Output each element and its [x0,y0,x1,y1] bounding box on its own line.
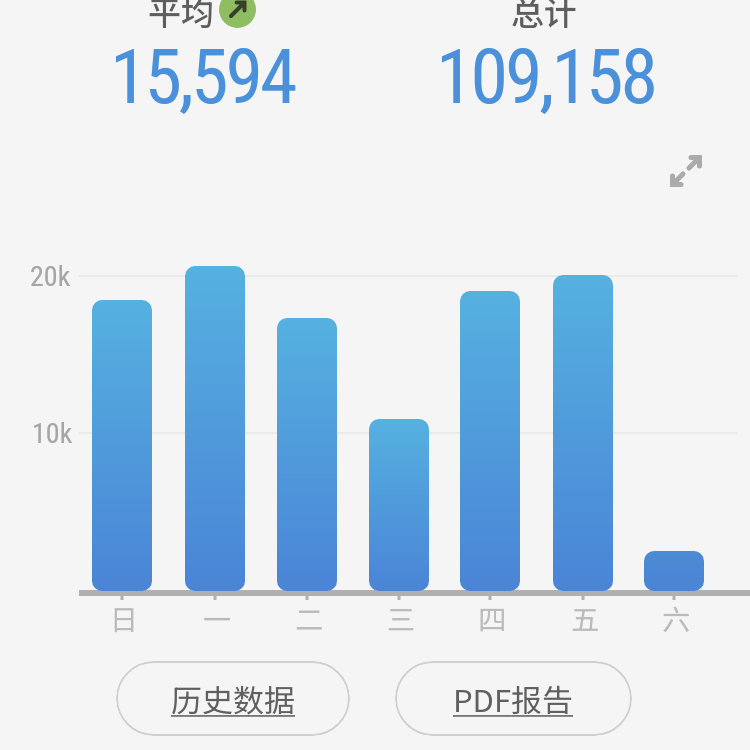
staticText: 10k [32,417,73,450]
button[interactable]: 历史数据 [116,661,350,736]
staticText: 日 [110,598,139,639]
staticText: PDF报告 [453,676,574,721]
staticText: 历史数据 [171,676,295,721]
button[interactable]: PDF报告 [395,661,632,736]
staticText: 总计 [511,0,577,35]
staticText: 四 [478,598,507,639]
staticText: 五 [571,598,600,639]
staticText: 二 [295,598,324,639]
staticText: 15,594 [110,32,295,121]
staticText: 三 [387,598,416,639]
staticText: 109,158 [436,32,656,121]
staticText: 20k [30,260,71,293]
staticText: 一 [203,598,232,639]
staticText: 六 [662,598,691,639]
button[interactable] [667,152,705,190]
staticText: 平均 [148,0,214,35]
